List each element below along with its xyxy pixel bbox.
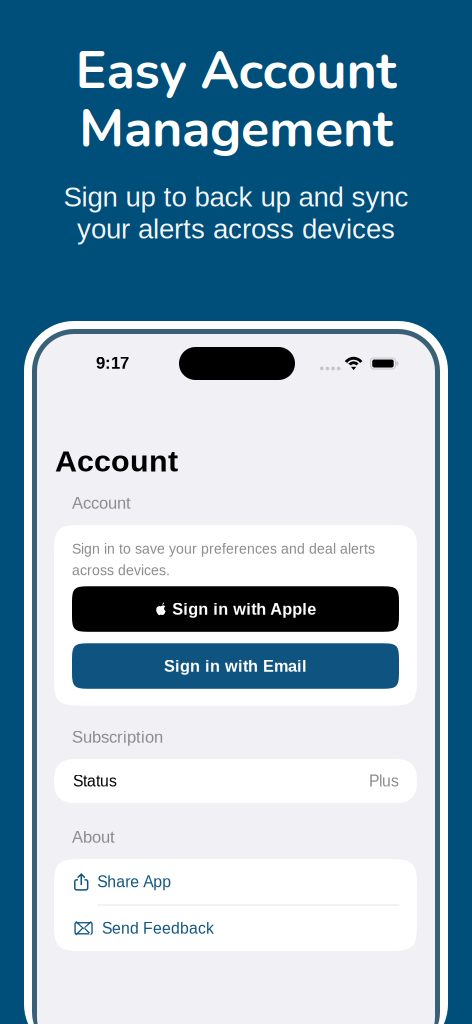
staticText: Management [79,93,393,164]
button[interactable]: Share App [54,859,417,904]
button[interactable]: Sign in with Apple [72,586,399,632]
button[interactable]: Send Feedback [54,905,417,951]
staticText: Send Feedback [102,919,214,937]
button[interactable]: Status [54,759,417,803]
staticText: Subscription [72,728,163,746]
staticText: Share App [97,873,171,891]
staticText: Status [73,772,117,790]
staticText: Account [72,494,131,512]
button[interactable]: Sign in with Email [72,643,399,689]
staticText: Sign in to save your preferences and dea… [72,541,375,578]
staticText: 9:17 [96,354,129,372]
staticText: Sign in with Apple [172,600,316,618]
staticText: Account [55,444,178,478]
staticText: Sign in with Email [164,657,307,675]
staticText: your alerts across devices [77,214,395,244]
staticText: Plus [369,772,399,790]
staticText: Sign up to back up and sync [63,182,408,212]
staticText: Easy Account [75,35,396,106]
staticText: About [72,828,115,846]
